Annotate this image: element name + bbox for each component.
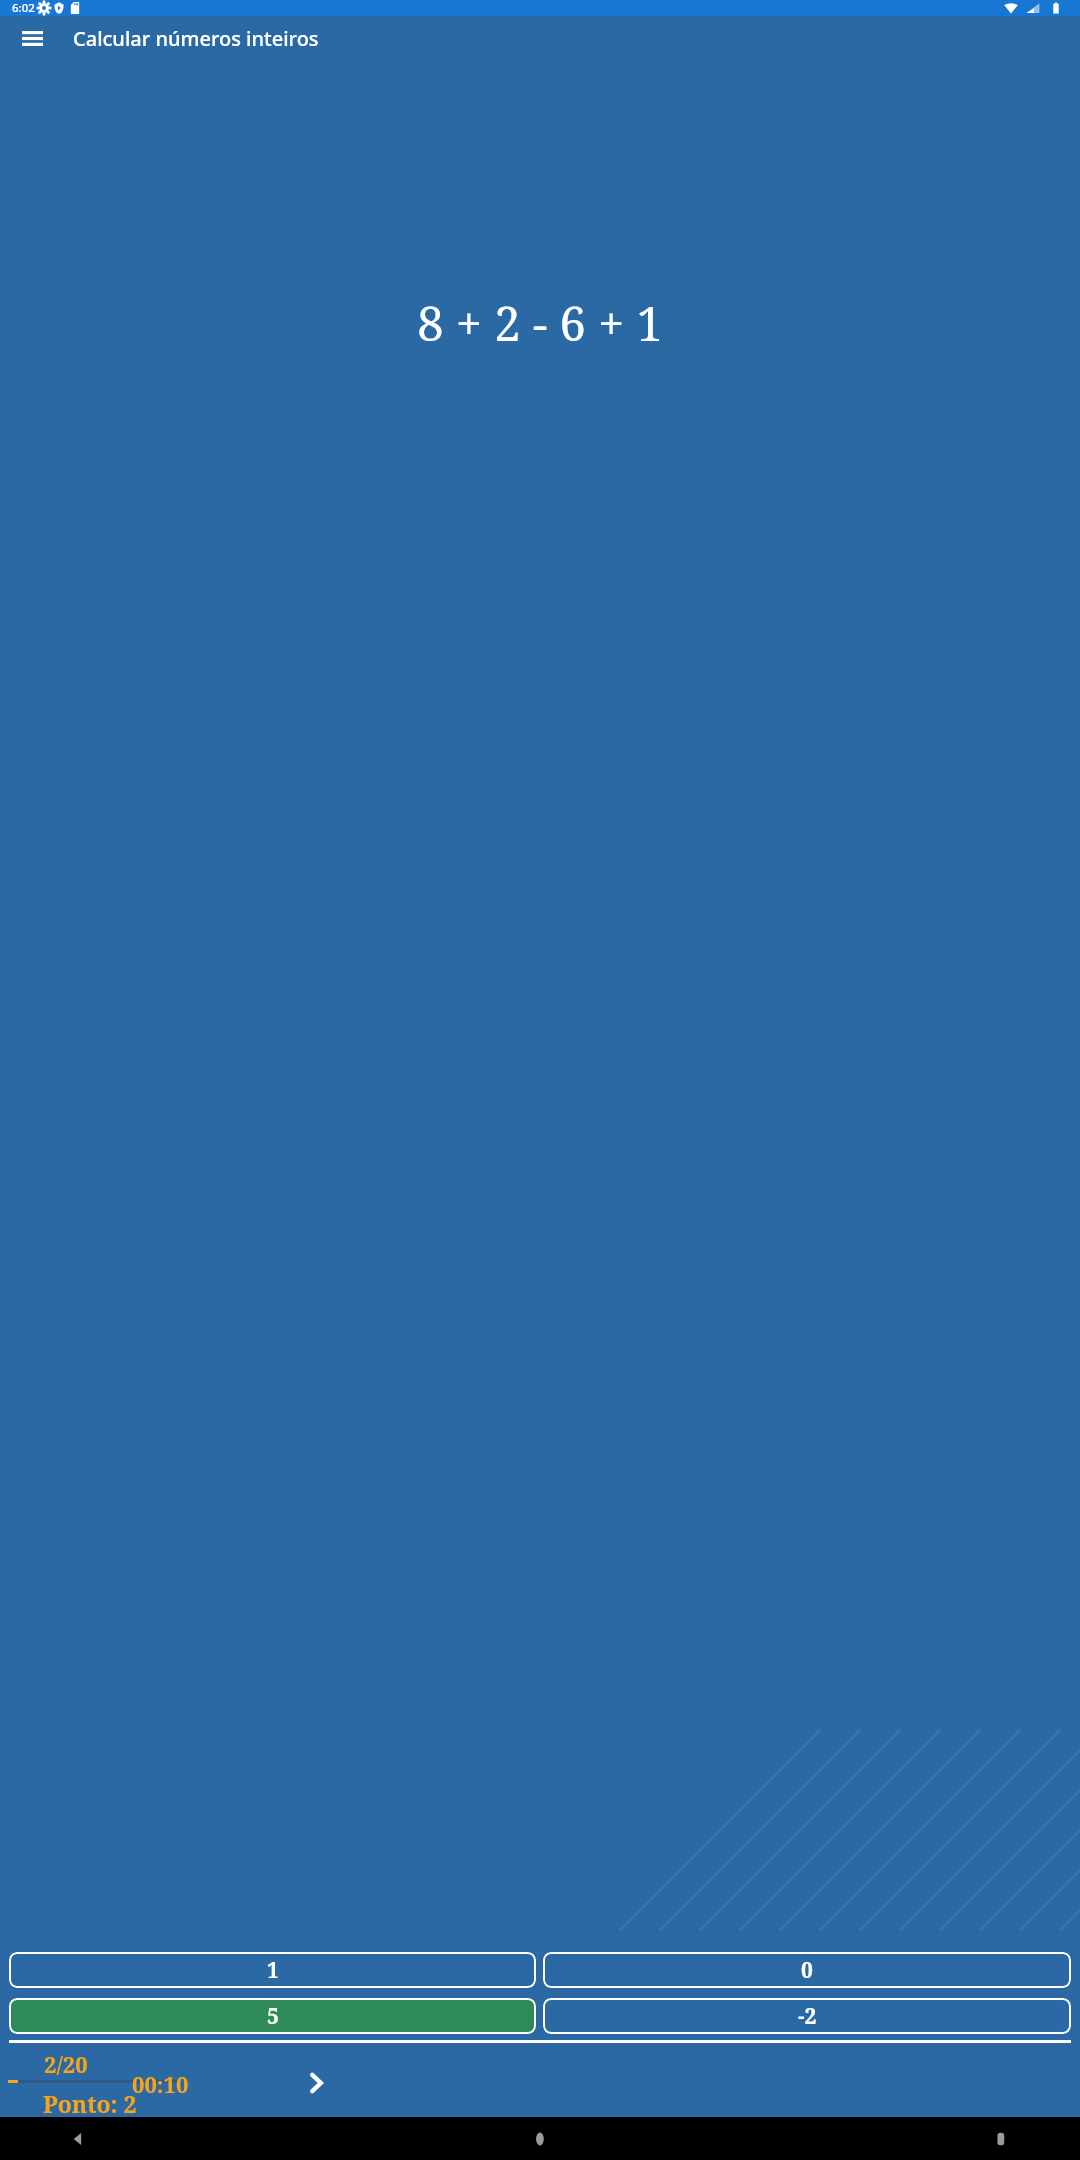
staticText: -2 (798, 2002, 817, 2031)
button[interactable]: -2 (543, 1998, 1071, 2034)
button[interactable]: Recents (992, 2130, 1010, 2148)
staticText: 00:10 (132, 2069, 189, 2099)
button[interactable]: 0 (543, 1952, 1071, 1988)
button[interactable]: Menu (8, 16, 56, 61)
button[interactable]: Next (290, 2057, 342, 2109)
button[interactable]: Home (531, 2130, 549, 2148)
button[interactable]: 1 (9, 1952, 536, 1988)
staticText: 1 (267, 1956, 279, 1985)
button[interactable]: Back (70, 2130, 88, 2148)
staticText: 5 (267, 2002, 279, 2031)
staticText: Calcular números inteiros (73, 25, 319, 52)
staticText: 0 (801, 1956, 813, 1985)
staticText: 2/20 (44, 2049, 88, 2079)
staticText: 8 + 2 - 6 + 1 (0, 291, 1080, 355)
staticText: 6:02 (12, 0, 35, 16)
staticText: Ponto: 2 (43, 2088, 137, 2119)
button[interactable]: 5 (9, 1998, 536, 2034)
